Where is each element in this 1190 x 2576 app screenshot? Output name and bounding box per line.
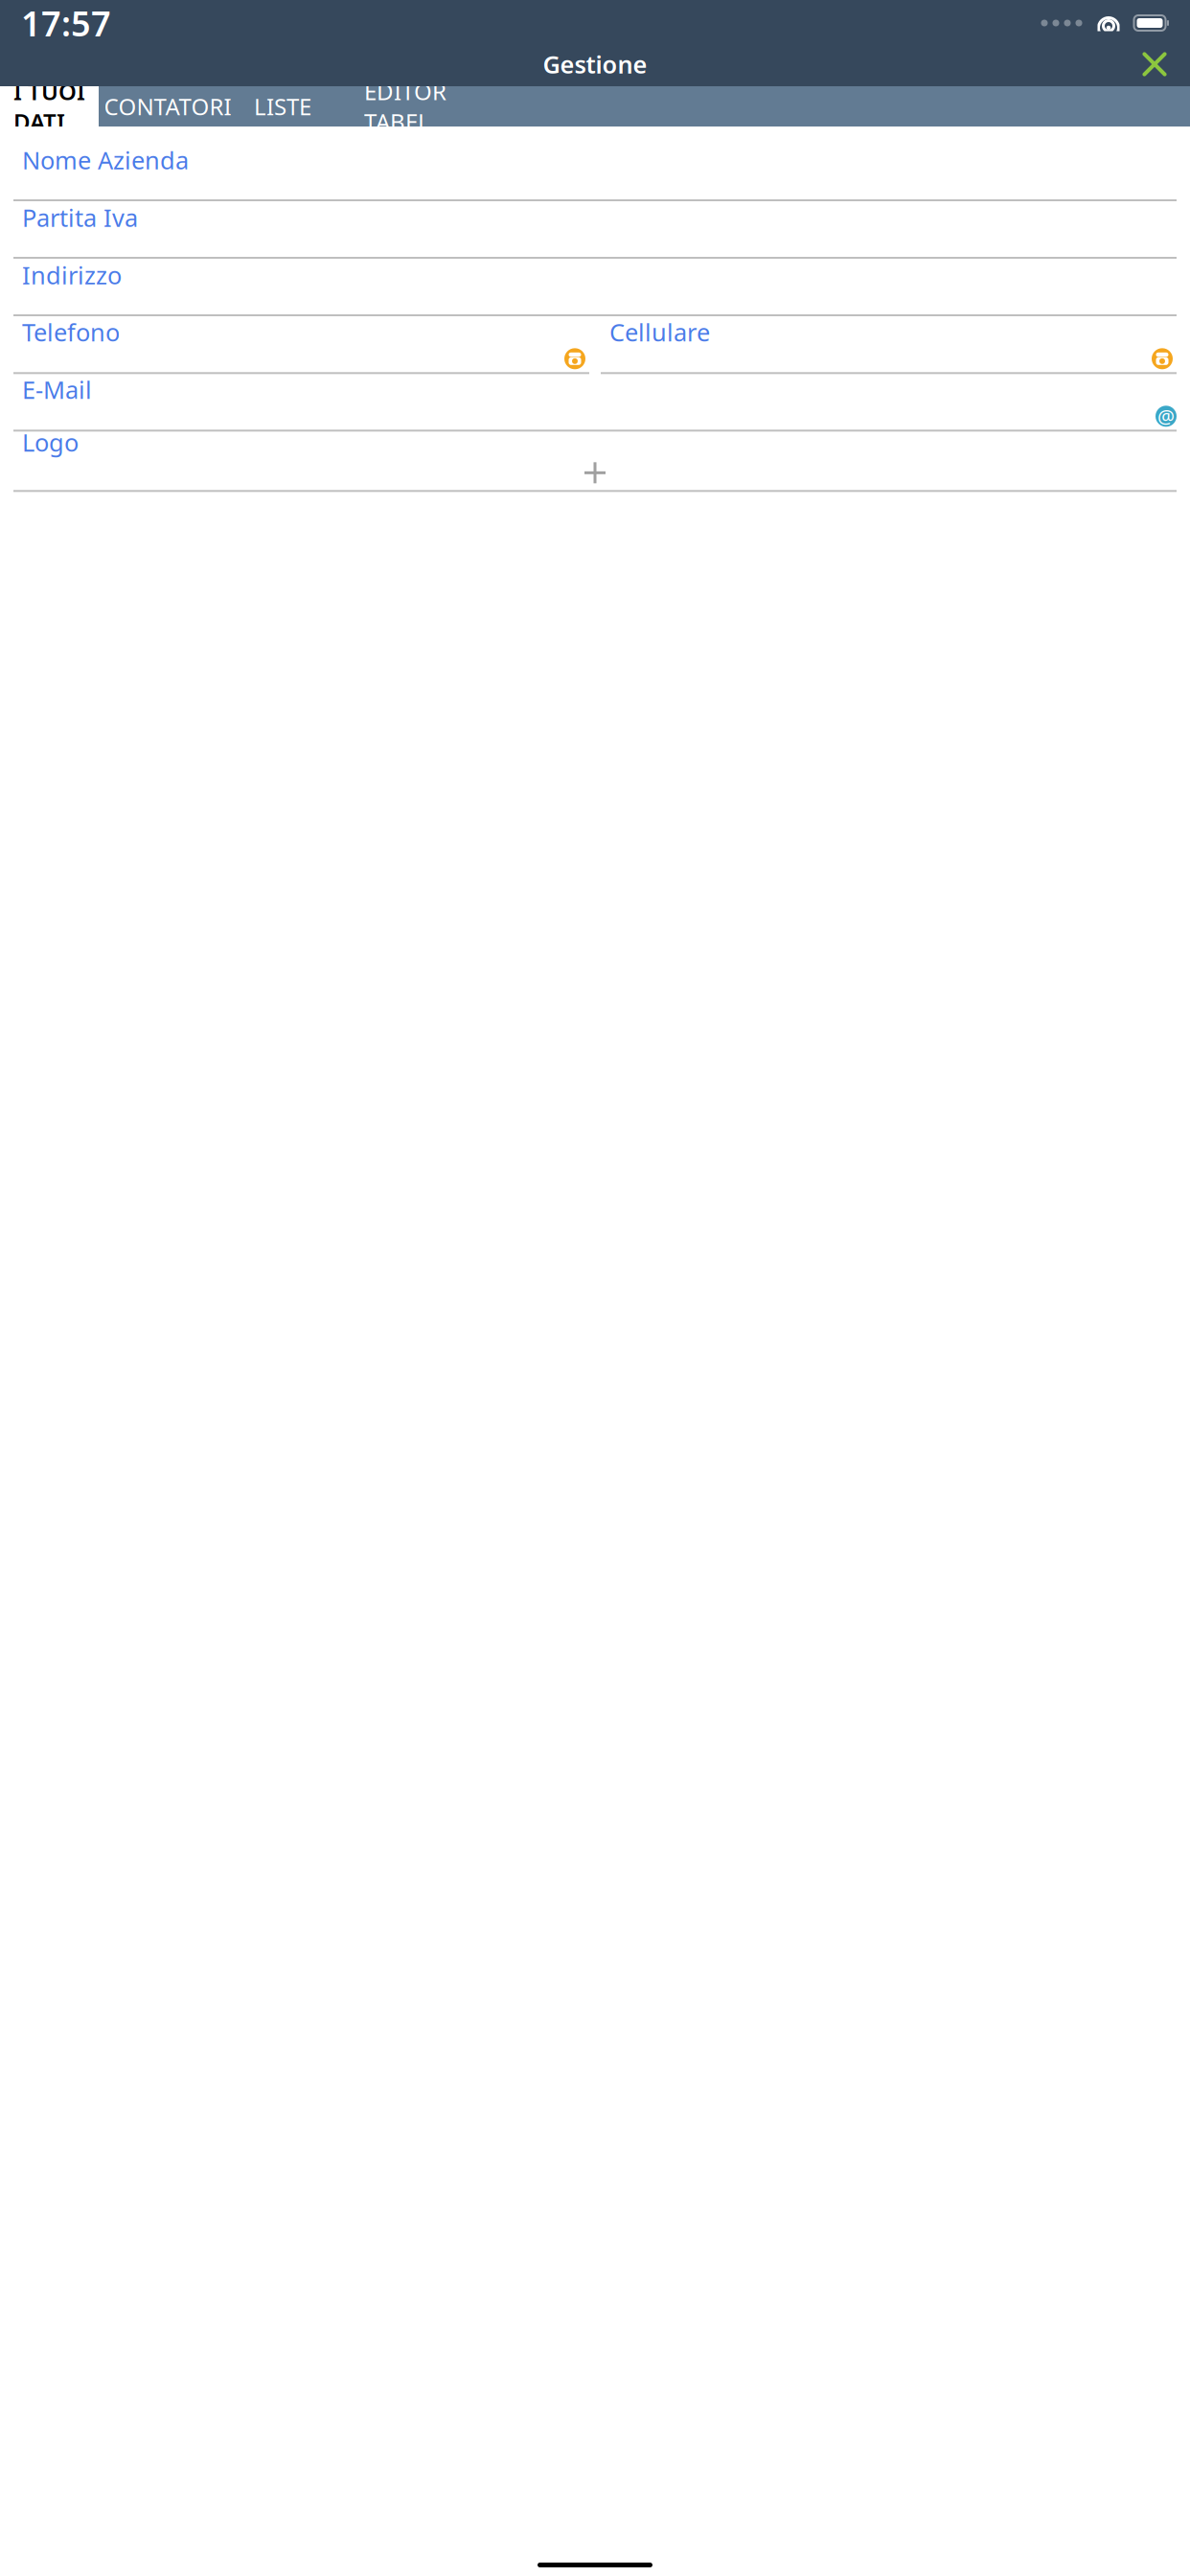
button[interactable]: CONTATORI	[99, 86, 237, 126]
button[interactable]: Invia e-mail	[1156, 406, 1177, 427]
staticText: Indirizzo	[22, 259, 122, 291]
staticText: I TUOI DATI	[13, 76, 85, 137]
button[interactable]: LISTE	[237, 86, 329, 126]
button[interactable]: I TUOI DATI	[0, 86, 99, 126]
button[interactable]: Chiama Telefono	[564, 348, 585, 369]
button[interactable]: Partita Iva	[13, 201, 1177, 259]
button[interactable]: Chiudi	[1129, 38, 1180, 90]
button[interactable]: Indirizzo	[13, 259, 1177, 316]
staticText: CONTATORI	[104, 91, 231, 122]
staticText: 17:57	[21, 0, 111, 46]
button[interactable]: Chiama Cellulare	[1152, 348, 1173, 369]
staticText: Telefono	[22, 316, 120, 348]
staticText: @	[1157, 403, 1175, 429]
staticText: Nome Azienda	[22, 144, 189, 176]
staticText: EDITOR TABEL	[364, 76, 446, 137]
staticText: LISTE	[254, 91, 311, 122]
staticText: E-Mail	[22, 373, 92, 406]
staticText: Gestione	[543, 48, 647, 80]
button[interactable]: Nome Azienda	[13, 144, 1177, 201]
button[interactable]: Aggiungi logo	[574, 458, 616, 487]
staticText: Partita Iva	[22, 201, 138, 233]
button[interactable]: EDITOR TABEL	[329, 86, 482, 126]
staticText: Cellulare	[609, 316, 710, 348]
staticText: Logo	[22, 426, 79, 458]
